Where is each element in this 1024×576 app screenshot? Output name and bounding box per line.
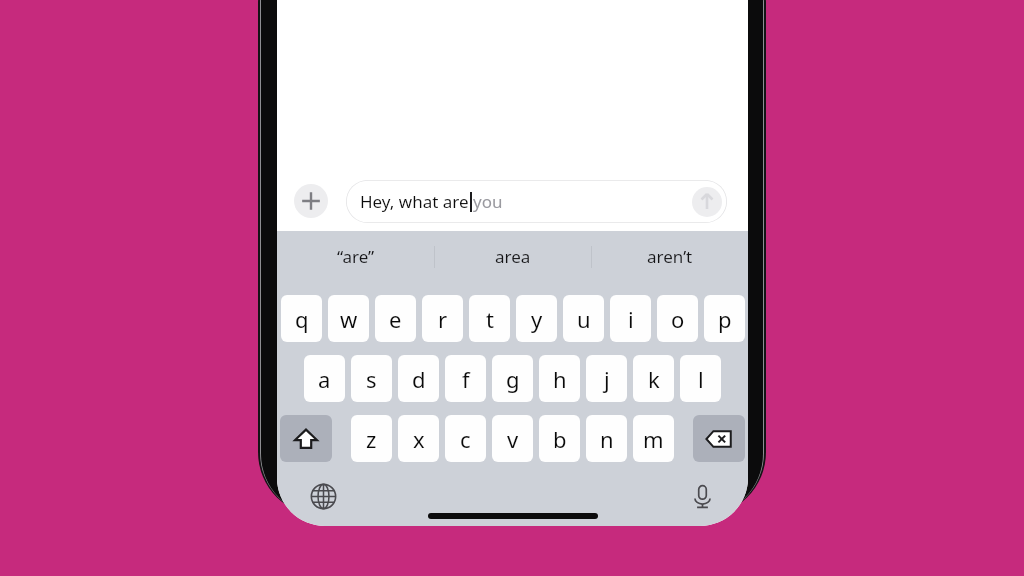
staticText: s (366, 364, 377, 394)
staticText: t (486, 304, 494, 334)
button[interactable]: x (398, 415, 439, 462)
button[interactable]: r (422, 295, 463, 342)
button[interactable]: u (563, 295, 604, 342)
button[interactable]: p (704, 295, 745, 342)
button[interactable]: g (492, 355, 533, 402)
staticText: h (553, 364, 567, 394)
button[interactable]: area (435, 231, 591, 282)
button[interactable]: t (469, 295, 510, 342)
button[interactable]: Add attachment (294, 184, 328, 218)
staticText: p (718, 304, 732, 334)
button[interactable]: l (680, 355, 721, 402)
staticText: q (295, 304, 309, 334)
staticText: you (473, 190, 503, 213)
staticText: g (506, 364, 520, 394)
staticText: area (495, 245, 531, 268)
staticText: z (366, 424, 377, 454)
staticText: a (318, 364, 331, 394)
button[interactable]: k (633, 355, 674, 402)
button[interactable]: n (586, 415, 627, 462)
button[interactable]: Change keyboard language (307, 480, 339, 512)
button[interactable]: s (351, 355, 392, 402)
button[interactable]: y (516, 295, 557, 342)
staticText: i (628, 304, 634, 334)
staticText: w (340, 304, 358, 334)
button[interactable]: Delete (693, 415, 745, 462)
button[interactable]: a (304, 355, 345, 402)
button[interactable]: b (539, 415, 580, 462)
button[interactable]: q (281, 295, 322, 342)
staticText: x (413, 424, 425, 454)
staticText: n (600, 424, 614, 454)
staticText: “are” (337, 245, 375, 268)
button[interactable]: Hey, what are (346, 180, 727, 223)
button[interactable]: e (375, 295, 416, 342)
button[interactable]: i (610, 295, 651, 342)
staticText: k (648, 364, 660, 394)
staticText: m (643, 424, 664, 454)
button[interactable]: c (445, 415, 486, 462)
button[interactable]: Send (692, 187, 722, 217)
staticText: u (577, 304, 591, 334)
button[interactable]: m (633, 415, 674, 462)
button[interactable]: aren’t (592, 231, 748, 282)
button[interactable]: Shift (280, 415, 332, 462)
staticText: v (507, 424, 519, 454)
button[interactable]: h (539, 355, 580, 402)
button[interactable]: j (586, 355, 627, 402)
button[interactable]: Dictate (686, 480, 718, 512)
staticText: d (412, 364, 426, 394)
staticText: y (531, 304, 543, 334)
staticText: f (462, 364, 470, 394)
staticText: j (604, 364, 610, 394)
staticText: c (460, 424, 471, 454)
button[interactable]: “are” (277, 231, 434, 282)
staticText: l (698, 364, 704, 394)
button[interactable]: v (492, 415, 533, 462)
staticText: aren’t (647, 245, 693, 268)
button[interactable]: w (328, 295, 369, 342)
button[interactable]: d (398, 355, 439, 402)
staticText: r (438, 304, 448, 334)
staticText: b (553, 424, 567, 454)
button[interactable]: z (351, 415, 392, 462)
button[interactable]: o (657, 295, 698, 342)
staticText: e (389, 304, 402, 334)
staticText: o (671, 304, 685, 334)
staticText: Hey, what are (360, 190, 469, 213)
button[interactable]: f (445, 355, 486, 402)
